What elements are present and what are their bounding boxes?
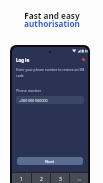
- staticText: Log in: [16, 57, 30, 63]
- button[interactable]: 2: [32, 173, 50, 183]
- staticText: authorisation: [24, 18, 80, 29]
- button[interactable]: 1: [12, 173, 31, 183]
- staticText: Fast and easy: [24, 10, 80, 21]
- staticText: Next: [45, 159, 55, 164]
- button[interactable]: Next: [17, 157, 83, 165]
- button[interactable]: Backspace: [70, 173, 88, 183]
- staticText: 3: [59, 176, 62, 183]
- staticText: Phone number: [16, 88, 42, 93]
- staticText: 1: [20, 176, 23, 183]
- staticText: +380 000 000000: [19, 98, 48, 103]
- staticText: Enter your phone number to recieve an SM…: [16, 67, 84, 72]
- staticText: code: [16, 73, 24, 78]
- button[interactable]: 3: [51, 173, 69, 183]
- staticText: 2: [40, 176, 43, 183]
- button[interactable]: +380 000 000000: [16, 96, 84, 104]
